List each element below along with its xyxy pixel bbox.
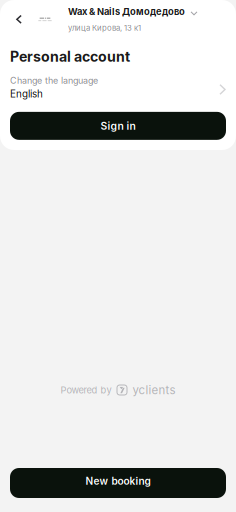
staticText: English (10, 88, 43, 100)
button[interactable]: Change the language (0, 65, 236, 100)
button[interactable]: Powered by (60, 383, 175, 397)
staticText: улица Кирова, 13 к1 (68, 23, 141, 33)
staticText: Personal account (10, 48, 130, 65)
button[interactable]: Switch branch (185, 6, 203, 32)
button[interactable]: Back (0, 6, 29, 32)
staticText: yclients (132, 383, 175, 397)
staticText: Sign in (100, 120, 135, 132)
staticText: Powered by (60, 384, 111, 396)
button[interactable]: Sign in (0, 100, 236, 140)
staticText: New booking (85, 475, 150, 487)
staticText: Change the language (10, 75, 98, 86)
staticText: Wax & Nails Домодедово (68, 6, 185, 17)
button[interactable]: New booking (0, 468, 236, 512)
